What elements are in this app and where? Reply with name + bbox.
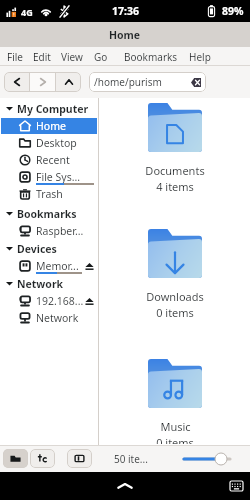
staticText: 4 items <box>156 179 194 194</box>
staticText: Home <box>36 119 66 133</box>
button[interactable]: Forward <box>30 72 55 92</box>
staticText: Desktop <box>36 136 77 150</box>
button[interactable]: Devices <box>0 240 98 257</box>
button[interactable]: Memor... <box>1 258 97 274</box>
staticText: Network <box>36 311 79 325</box>
button[interactable]: My Computer <box>0 100 98 117</box>
button[interactable]: Music <box>142 358 208 445</box>
button[interactable]: Up <box>56 72 81 92</box>
staticText: 17:36 <box>112 4 139 18</box>
staticText: File <box>7 50 23 64</box>
button[interactable]: Back <box>4 72 29 92</box>
staticText: Home <box>109 28 141 42</box>
button[interactable]: Sort order <box>30 449 55 468</box>
staticText: 0 items <box>156 305 194 320</box>
staticText: 192.168... <box>36 294 84 308</box>
staticText: Bookmarks <box>124 50 178 64</box>
button[interactable]: Network <box>1 310 97 326</box>
staticText: Downloads <box>146 289 204 304</box>
button[interactable]: Trash <box>1 186 97 202</box>
button[interactable]: Toggle sidebar <box>67 449 92 468</box>
button[interactable]: Bookmarks <box>113 50 183 64</box>
staticText: Bookmarks <box>17 207 77 221</box>
staticText: Edit <box>33 50 51 64</box>
button[interactable]: 192.168... <box>1 293 97 309</box>
staticText: Go <box>94 50 108 64</box>
button[interactable]: Go <box>88 50 113 64</box>
staticText: Music <box>160 419 191 434</box>
staticText: Raspber... <box>36 224 84 238</box>
button[interactable]: File <box>2 50 28 64</box>
staticText: Recent <box>36 153 70 167</box>
staticText: 0 items <box>156 435 194 444</box>
staticText: /home/purism <box>94 75 162 89</box>
button[interactable]: Documents <box>139 102 211 195</box>
button[interactable]: Edit <box>28 50 56 64</box>
button[interactable]: Recent <box>1 152 97 168</box>
button[interactable]: Network <box>0 275 98 292</box>
staticText: Documents <box>145 163 205 178</box>
staticText: 50 ite... <box>114 452 148 466</box>
button[interactable]: File Sys... <box>1 169 97 185</box>
other: Clear <box>191 78 201 87</box>
staticText: My Computer <box>17 102 89 116</box>
button[interactable]: Downloads <box>140 228 210 321</box>
staticText: 89% <box>222 4 244 18</box>
staticText: View <box>61 50 83 64</box>
button[interactable]: View <box>56 50 88 64</box>
button[interactable]: Home <box>1 118 97 134</box>
staticText: Devices <box>17 242 57 256</box>
staticText: Trash <box>36 187 63 201</box>
staticText: Help <box>189 50 211 64</box>
button[interactable]: Help <box>183 50 216 64</box>
button[interactable]: Zoom level <box>182 451 232 467</box>
button[interactable]: /home/purism <box>89 72 206 92</box>
button[interactable]: Folder view <box>3 449 28 468</box>
staticText: File Sys... <box>36 170 81 184</box>
staticText: Network <box>17 277 64 291</box>
button[interactable]: Raspber... <box>1 223 97 239</box>
button[interactable]: Bookmarks <box>0 205 98 222</box>
staticText: Memor... <box>36 259 79 273</box>
button[interactable]: Keyboard <box>228 479 244 493</box>
staticText: 4G <box>21 6 33 18</box>
button[interactable]: Expand <box>112 476 138 496</box>
button[interactable]: Desktop <box>1 135 97 151</box>
